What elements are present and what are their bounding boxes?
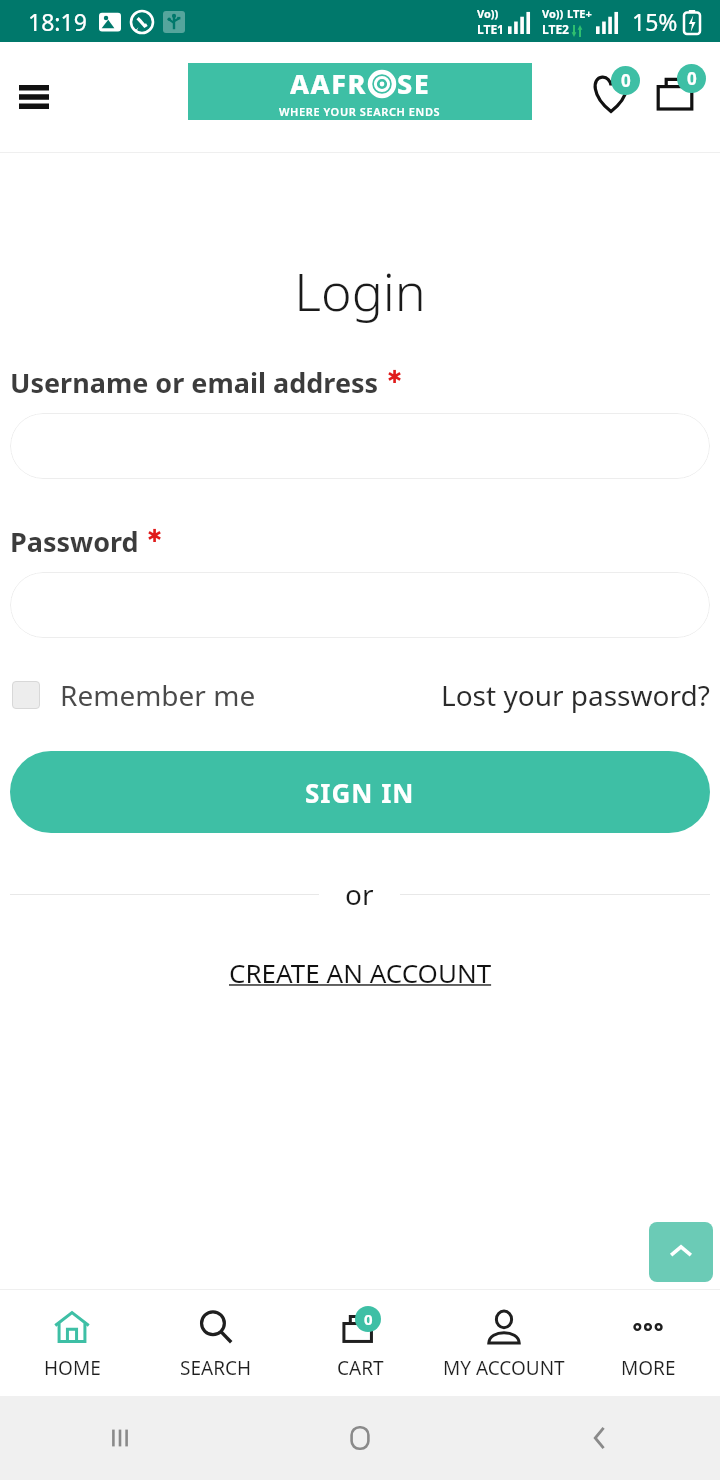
button[interactable]: SIGN IN (10, 751, 710, 833)
staticText: MORE (621, 1355, 676, 1381)
button[interactable]: Lost your password? (441, 676, 710, 714)
button[interactable]: Scroll to top (649, 1222, 713, 1282)
staticText: 18:19 (28, 6, 87, 37)
button[interactable]: SEARCH (144, 1299, 288, 1387)
staticText: 0 (621, 69, 631, 92)
staticText: SE (397, 65, 431, 102)
staticText: 15% (632, 6, 678, 37)
staticText: 0 (687, 67, 697, 90)
staticText: Lost your password? (441, 676, 710, 714)
button[interactable]: Menu (6, 69, 62, 125)
staticText: ✱ (147, 525, 163, 546)
button[interactable] (10, 413, 710, 479)
staticText: Username or email address (10, 364, 379, 401)
button[interactable]: Home (240, 1396, 480, 1480)
staticText: Vo)) (542, 6, 564, 21)
staticText: CREATE AN ACCOUNT (229, 955, 492, 990)
button[interactable] (10, 572, 710, 638)
button[interactable]: Aafrose home (188, 63, 532, 120)
staticText: SIGN IN (305, 775, 415, 810)
staticText: Password (10, 523, 139, 560)
staticText: SEARCH (180, 1355, 252, 1381)
staticText: Remember me (60, 676, 256, 714)
staticText: WHERE YOUR SEARCH ENDS (279, 104, 441, 119)
staticText: Vo)) (477, 6, 499, 21)
button[interactable]: Wishlist (580, 62, 642, 124)
button[interactable]: 0 (288, 1299, 432, 1387)
staticText: LTE+ (567, 6, 592, 21)
staticText: or (345, 875, 374, 913)
staticText: HOME (44, 1355, 101, 1381)
button[interactable]: Remember me (12, 676, 256, 714)
button[interactable]: Cart (644, 62, 706, 124)
button[interactable]: CREATE AN ACCOUNT (0, 955, 720, 990)
button[interactable]: MY ACCOUNT (432, 1299, 576, 1387)
staticText: ✱ (387, 366, 403, 387)
staticText: Login (0, 255, 720, 326)
button[interactable]: HOME (0, 1299, 144, 1387)
staticText: CART (337, 1355, 384, 1381)
staticText: LTE2 (542, 21, 569, 37)
button[interactable]: MORE (576, 1299, 720, 1387)
staticText: LTE1 (477, 21, 504, 37)
button[interactable]: Back (480, 1396, 720, 1480)
button[interactable]: Recents (0, 1396, 240, 1480)
staticText: AAFR (290, 65, 367, 102)
staticText: MY ACCOUNT (443, 1355, 565, 1381)
staticText: 0 (364, 1309, 373, 1329)
